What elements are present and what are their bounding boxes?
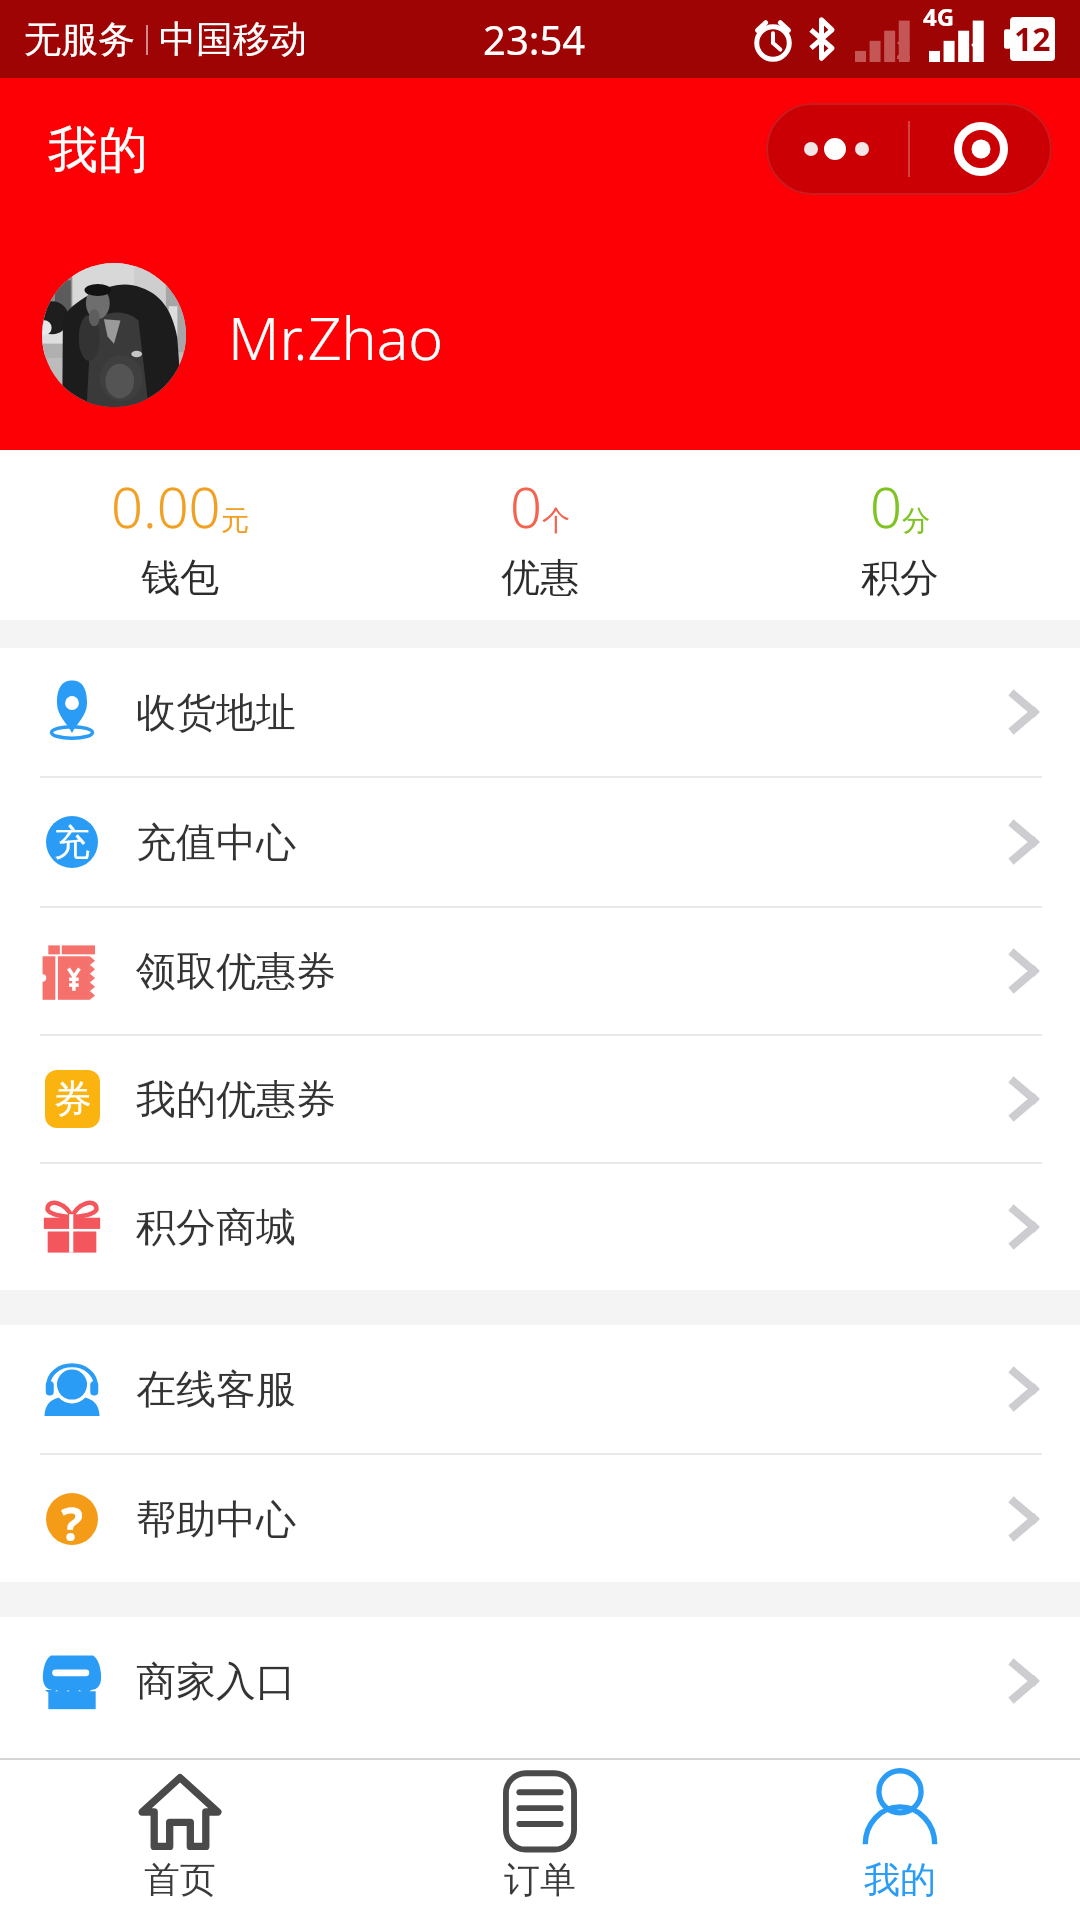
staticText: 个 bbox=[542, 503, 570, 538]
staticText: 无服务 bbox=[24, 16, 135, 63]
button[interactable]: 0.00 bbox=[0, 450, 360, 620]
staticText: 4G bbox=[923, 0, 955, 33]
button[interactable]: Close bbox=[910, 103, 1052, 195]
button[interactable]: 收货地址 bbox=[0, 648, 1080, 776]
staticText: 收货地址 bbox=[136, 687, 296, 737]
staticText: 领取优惠券 bbox=[136, 946, 336, 996]
staticText: 1 bbox=[970, 31, 985, 66]
staticText: 优惠 bbox=[501, 553, 579, 602]
staticText: 0.00 bbox=[111, 468, 221, 544]
staticText: 充 bbox=[54, 820, 90, 865]
staticText: 在线客服 bbox=[136, 1364, 296, 1414]
staticText: 0 bbox=[870, 468, 902, 544]
button[interactable]: 在线客服 bbox=[0, 1325, 1080, 1453]
button[interactable]: 商家入口 bbox=[0, 1617, 1080, 1745]
button[interactable]: 首页 bbox=[0, 1760, 360, 1911]
staticText: 元 bbox=[221, 503, 249, 538]
staticText: ? bbox=[61, 1493, 83, 1544]
staticText: 2 bbox=[896, 31, 911, 66]
staticText: 商家入口 bbox=[136, 1656, 296, 1706]
staticText: 我的优惠券 bbox=[136, 1074, 336, 1124]
button[interactable]: 0 bbox=[720, 450, 1080, 620]
staticText: Mr.Zhao bbox=[228, 297, 444, 377]
staticText: 订单 bbox=[504, 1857, 576, 1902]
button[interactable]: 订单 bbox=[360, 1760, 720, 1911]
staticText: 分 bbox=[902, 503, 930, 538]
staticText: 积分 bbox=[861, 553, 939, 602]
staticText: 23:54 bbox=[483, 12, 586, 66]
button[interactable]: 0 bbox=[360, 450, 720, 620]
staticText: 0 bbox=[510, 468, 542, 544]
button[interactable]: 我的 bbox=[720, 1760, 1080, 1911]
staticText: 12 bbox=[1014, 17, 1051, 61]
button[interactable]: 充 bbox=[0, 778, 1080, 906]
staticText: 钱包 bbox=[141, 553, 219, 602]
staticText: 充值中心 bbox=[136, 817, 296, 867]
staticText: 积分商城 bbox=[136, 1202, 296, 1252]
button[interactable]: More options bbox=[766, 103, 908, 195]
button[interactable]: 积分商城 bbox=[0, 1164, 1080, 1290]
button[interactable]: 券 bbox=[0, 1036, 1080, 1162]
staticText: 首页 bbox=[144, 1857, 216, 1902]
staticText: 帮助中心 bbox=[136, 1494, 296, 1544]
staticText: 我的 bbox=[48, 119, 148, 182]
staticText: 券 bbox=[54, 1075, 92, 1123]
staticText: 我的 bbox=[864, 1857, 936, 1902]
staticText: 中国移动 bbox=[159, 16, 307, 63]
button[interactable]: 领取优惠券 bbox=[0, 908, 1080, 1034]
button[interactable]: ? bbox=[0, 1455, 1080, 1582]
